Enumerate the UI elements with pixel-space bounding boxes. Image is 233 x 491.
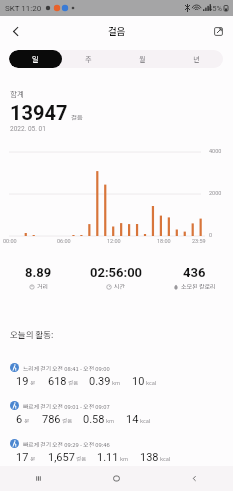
- staticText: 월: [139, 54, 146, 64]
- staticText: 786: [42, 413, 61, 426]
- staticText: 0.58: [83, 413, 105, 426]
- staticText: 주: [85, 54, 92, 64]
- staticText: 걸음: [62, 417, 73, 425]
- staticText: 12:00: [107, 238, 121, 244]
- staticText: 소모된 칼로리: [181, 282, 216, 291]
- staticText: 19: [16, 375, 29, 388]
- staticText: 02:56:00: [90, 265, 143, 280]
- button[interactable]: 주: [62, 50, 115, 68]
- staticText: 걸음: [68, 379, 79, 387]
- button[interactable]: 느리게 걷기 오전 08:41 - 오전 09:00: [10, 363, 233, 388]
- staticText: 10: [132, 375, 145, 388]
- button[interactable]: Back: [155, 466, 233, 491]
- staticText: 17: [16, 451, 29, 464]
- staticText: kcal: [140, 417, 151, 425]
- staticText: 1,657: [48, 451, 75, 464]
- staticText: kcal: [146, 379, 157, 387]
- staticText: 합계: [10, 88, 24, 99]
- staticText: SKT 11:20: [5, 4, 42, 13]
- staticText: km: [112, 379, 121, 387]
- staticText: 분: [24, 417, 30, 425]
- staticText: 14: [126, 413, 139, 426]
- staticText: 1.11: [97, 451, 119, 464]
- staticText: 분: [30, 379, 36, 387]
- staticText: kcal: [160, 455, 171, 463]
- staticText: km: [106, 417, 115, 425]
- staticText: 8.89: [25, 265, 52, 280]
- staticText: 0.39: [89, 375, 111, 388]
- staticText: 436: [183, 265, 206, 280]
- staticText: 13947: [10, 101, 68, 124]
- staticText: 2000: [209, 190, 222, 196]
- staticText: 걸음: [76, 455, 87, 463]
- staticText: 느리게 걷기 오전 08:41 - 오전 09:00: [23, 364, 110, 372]
- staticText: 빠르게 걷기 오전 09:01 - 오전 09:07: [23, 402, 110, 410]
- button[interactable]: 월: [115, 50, 169, 68]
- staticText: 2022. 05. 01: [10, 125, 46, 133]
- button[interactable]: 년: [169, 50, 223, 68]
- staticText: 18:00: [157, 238, 171, 244]
- button[interactable]: 빠르게 걷기 오전 09:01 - 오전 09:07: [10, 401, 233, 426]
- staticText: 년: [193, 54, 200, 64]
- staticText: 06:00: [57, 238, 71, 244]
- staticText: 138: [140, 451, 159, 464]
- staticText: 거리: [37, 282, 49, 291]
- button[interactable]: 빠르게 걷기 오전 09:29 - 오전 09:46: [10, 439, 233, 464]
- staticText: km: [120, 455, 129, 463]
- staticText: 빠르게 걷기 오전 09:29 - 오전 09:46: [23, 440, 110, 448]
- staticText: 00:00: [3, 238, 17, 244]
- staticText: 오늘의 활동:: [10, 328, 54, 340]
- staticText: 23:59: [192, 238, 206, 244]
- staticText: 시간: [114, 282, 126, 291]
- button[interactable]: Open in new window: [207, 20, 229, 42]
- staticText: 걸음: [71, 112, 83, 121]
- staticText: 분: [30, 455, 36, 463]
- staticText: 6: [16, 413, 23, 426]
- staticText: 걸음: [108, 24, 126, 38]
- staticText: 4000: [209, 148, 222, 154]
- button[interactable]: Back: [4, 20, 26, 42]
- staticText: 일: [32, 54, 39, 64]
- button[interactable]: 일: [9, 50, 62, 68]
- staticText: 618: [48, 375, 67, 388]
- button[interactable]: Home: [77, 466, 155, 491]
- button[interactable]: Recent apps: [0, 466, 77, 491]
- staticText: 0: [209, 232, 213, 238]
- staticText: 45%: [208, 4, 222, 13]
